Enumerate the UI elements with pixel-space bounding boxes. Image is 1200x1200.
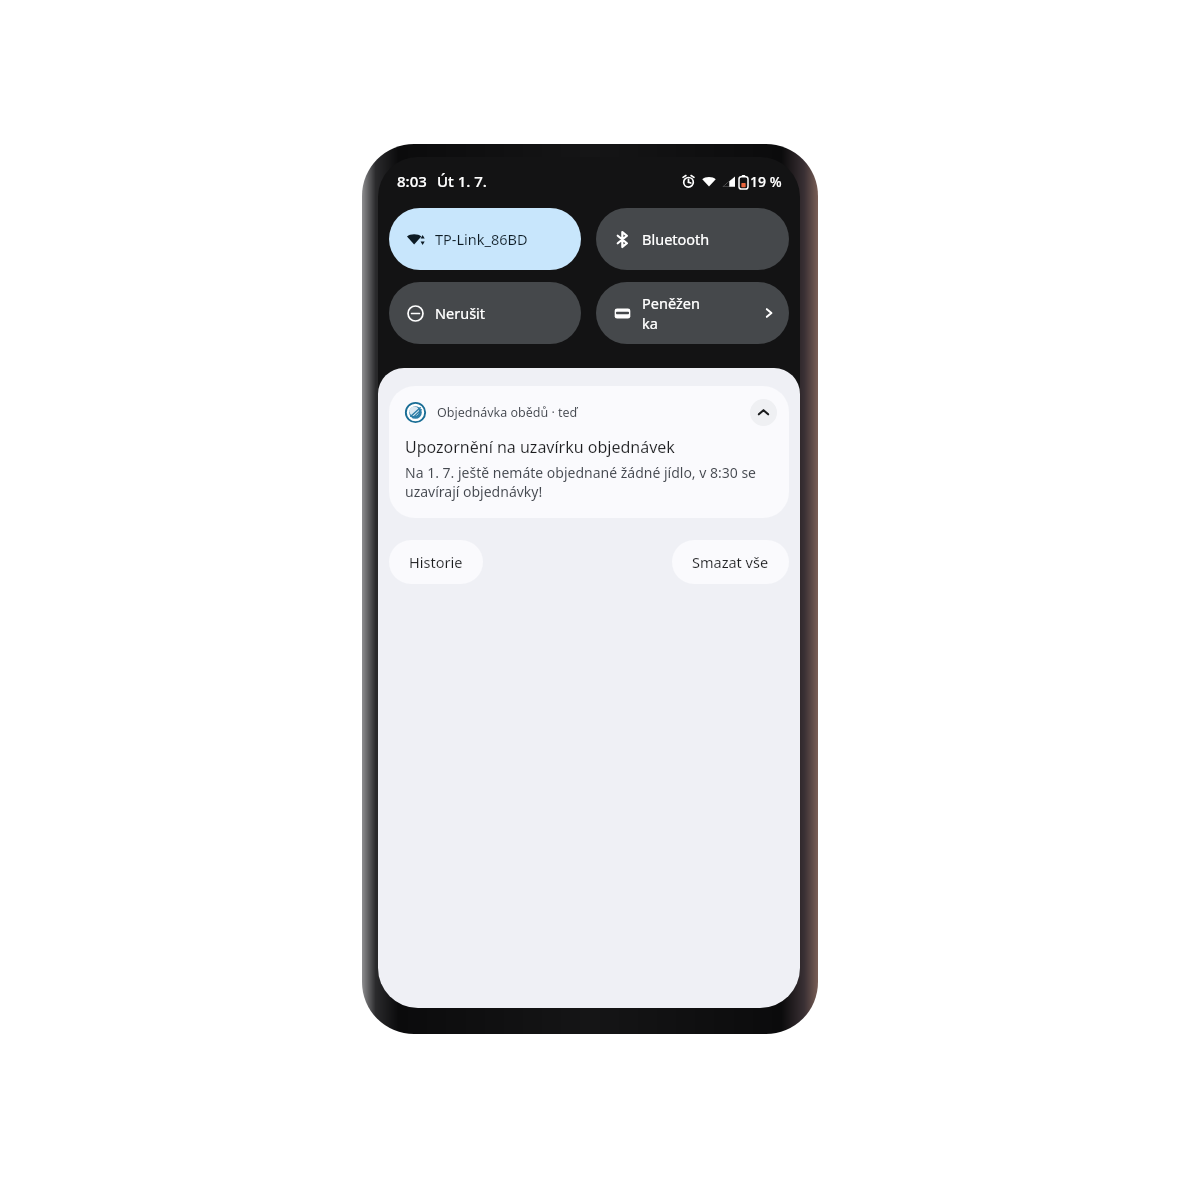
staticText: Út 1. 7.: [437, 171, 487, 191]
staticText: Smazat vše: [692, 552, 769, 572]
button[interactable]: Historie: [389, 540, 483, 584]
staticText: Na 1. 7. ještě nemáte objednané žádné jí…: [405, 463, 777, 501]
button[interactable]: Bluetooth: [596, 208, 789, 270]
button[interactable]: Objednávka obědů · teď: [389, 386, 789, 518]
staticText: TP-Link_86BD: [435, 229, 528, 249]
staticText: Upozornění na uzavírku objednávek: [405, 436, 675, 458]
button[interactable]: Smazat vše: [672, 540, 789, 584]
staticText: 19 %: [750, 172, 782, 191]
staticText: Historie: [409, 552, 463, 572]
staticText: Bluetooth: [642, 229, 710, 249]
button[interactable]: Peněženka: [596, 282, 789, 344]
staticText: Nerušit: [435, 303, 486, 323]
button[interactable]: Collapse notification: [750, 399, 777, 426]
staticText: Peněženka: [642, 293, 702, 333]
staticText: Objednávka obědů · teď: [437, 404, 578, 421]
button[interactable]: TP-Link_86BD: [389, 208, 581, 270]
button[interactable]: Nerušit: [389, 282, 581, 344]
staticText: 8:03: [397, 171, 427, 191]
